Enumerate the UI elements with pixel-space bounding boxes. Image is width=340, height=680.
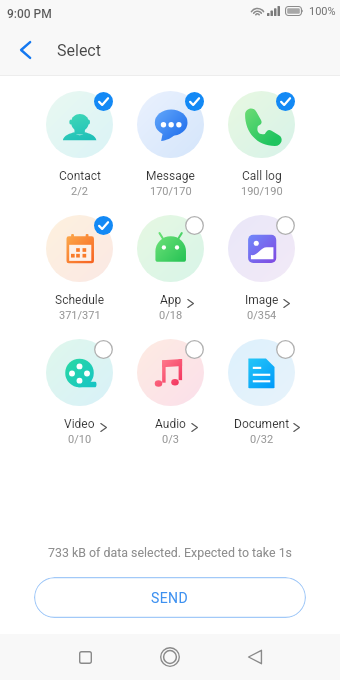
staticText: 2/2 xyxy=(71,185,88,198)
staticText: Audio xyxy=(155,417,186,431)
staticText: Document xyxy=(234,417,290,431)
button[interactable]: App xyxy=(137,215,204,282)
staticText: 733 kB of data selected. Expected to tak… xyxy=(0,545,340,560)
button[interactable]: Contact xyxy=(46,91,113,158)
staticText: 170/170 xyxy=(150,185,192,198)
staticText: 0/32 xyxy=(250,433,274,446)
staticText: 0/18 xyxy=(159,309,183,322)
button[interactable]: Video xyxy=(46,339,113,406)
staticText: App xyxy=(160,293,182,307)
staticText: 0/3 xyxy=(162,433,179,446)
button[interactable]: Call log xyxy=(228,91,295,158)
button[interactable]: Image xyxy=(228,215,295,282)
staticText: Message xyxy=(146,169,195,183)
staticText: Select xyxy=(57,41,101,60)
button[interactable]: Audio xyxy=(137,339,204,406)
staticText: Schedule xyxy=(55,293,105,307)
button[interactable]: Back xyxy=(7,32,43,68)
button[interactable]: SEND xyxy=(34,577,306,618)
staticText: 190/190 xyxy=(241,185,283,198)
button[interactable]: Document xyxy=(228,339,295,406)
button[interactable]: Recents xyxy=(65,637,105,677)
staticText: Video xyxy=(64,417,95,431)
button[interactable]: Home xyxy=(150,637,190,677)
staticText: Image xyxy=(245,293,279,307)
staticText: 0/10 xyxy=(68,433,92,446)
staticText: 371/371 xyxy=(59,309,101,322)
button[interactable]: Message xyxy=(137,91,204,158)
staticText: 100% xyxy=(309,5,336,18)
staticText: 0/354 xyxy=(247,309,277,322)
staticText: SEND xyxy=(151,590,189,606)
staticText: Contact xyxy=(59,169,101,183)
staticText: 9:00 PM xyxy=(7,7,52,21)
button[interactable]: Schedule xyxy=(46,215,113,282)
staticText: Call log xyxy=(242,169,282,183)
button[interactable]: Back xyxy=(235,637,275,677)
